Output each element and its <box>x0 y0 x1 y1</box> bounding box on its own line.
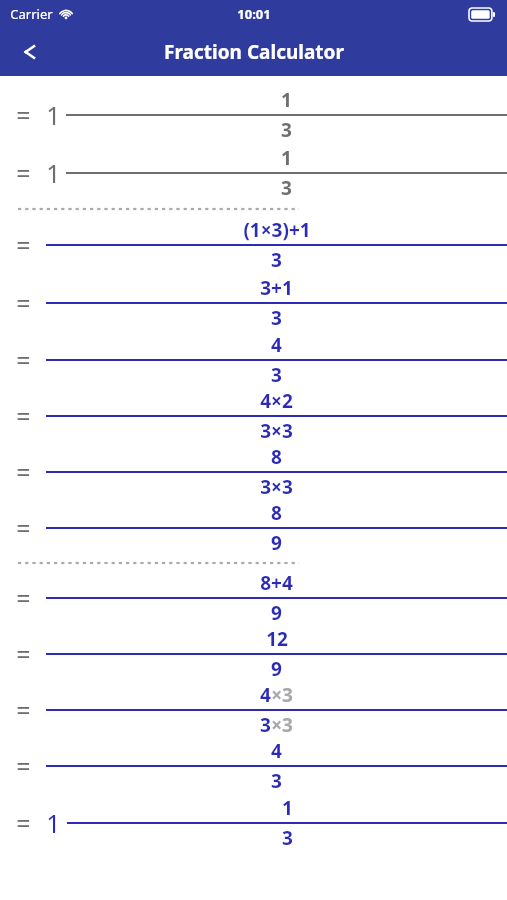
staticText: 1 <box>46 806 61 840</box>
staticText: = <box>16 455 31 489</box>
staticText: = <box>16 806 31 840</box>
button[interactable]: = <box>0 332 507 388</box>
staticText: 4 <box>260 682 271 708</box>
staticText: ×3 <box>271 682 293 708</box>
button[interactable]: = <box>0 86 507 144</box>
staticText: 3+1 <box>260 275 293 301</box>
button[interactable]: = <box>0 570 507 626</box>
staticText: = <box>16 581 31 615</box>
staticText: 3×3 <box>260 474 293 500</box>
staticText: = <box>16 286 31 320</box>
staticText: 8 <box>271 500 282 526</box>
staticText: = <box>16 749 31 783</box>
button[interactable]: = <box>0 216 507 274</box>
staticText: 3 <box>281 175 292 201</box>
staticText: = <box>16 343 31 377</box>
staticText: 3 <box>271 362 282 388</box>
staticText: (1×3)+1 <box>243 217 311 243</box>
staticText: 1 <box>46 156 61 190</box>
staticText: = <box>16 637 31 671</box>
button[interactable]: = <box>0 682 507 738</box>
staticText: 3 <box>271 247 282 273</box>
staticText: 1 <box>281 87 292 113</box>
staticText: 3×3 <box>260 418 293 444</box>
staticText: 4 <box>271 332 282 358</box>
staticText: 9 <box>271 656 282 682</box>
staticText: 9 <box>271 600 282 626</box>
staticText: = <box>16 693 31 727</box>
staticText: 1 <box>281 145 292 171</box>
staticText: 3 <box>281 117 292 143</box>
staticText: Carrier <box>10 5 53 23</box>
button[interactable]: = <box>0 626 507 682</box>
button[interactable]: = <box>0 500 507 556</box>
staticText: 12 <box>266 626 288 652</box>
staticText: = <box>16 98 31 132</box>
staticText: 10:01 <box>237 5 271 23</box>
staticText: 9 <box>271 530 282 556</box>
staticText: = <box>16 511 31 545</box>
staticText: 3 <box>271 305 282 331</box>
staticText: 8 <box>271 444 282 470</box>
staticText: Fraction Calculator <box>164 39 344 65</box>
button[interactable]: = <box>0 444 507 500</box>
staticText: 3 <box>260 712 271 738</box>
staticText: = <box>16 156 31 190</box>
staticText: 3 <box>282 825 293 851</box>
staticText: 3 <box>271 768 282 794</box>
button[interactable]: Back <box>8 30 52 74</box>
staticText: ×3 <box>271 712 293 738</box>
staticText: 1 <box>46 98 61 132</box>
button[interactable]: = <box>0 388 507 444</box>
staticText: 4×2 <box>260 388 293 414</box>
staticText: = <box>16 228 31 262</box>
staticText: 4 <box>271 738 282 764</box>
button[interactable]: = <box>0 794 507 852</box>
staticText: 8+4 <box>260 570 293 596</box>
button[interactable]: = <box>0 274 507 332</box>
staticText: 1 <box>282 795 293 821</box>
staticText: = <box>16 399 31 433</box>
button[interactable]: = <box>0 144 507 202</box>
button[interactable]: = <box>0 738 507 794</box>
